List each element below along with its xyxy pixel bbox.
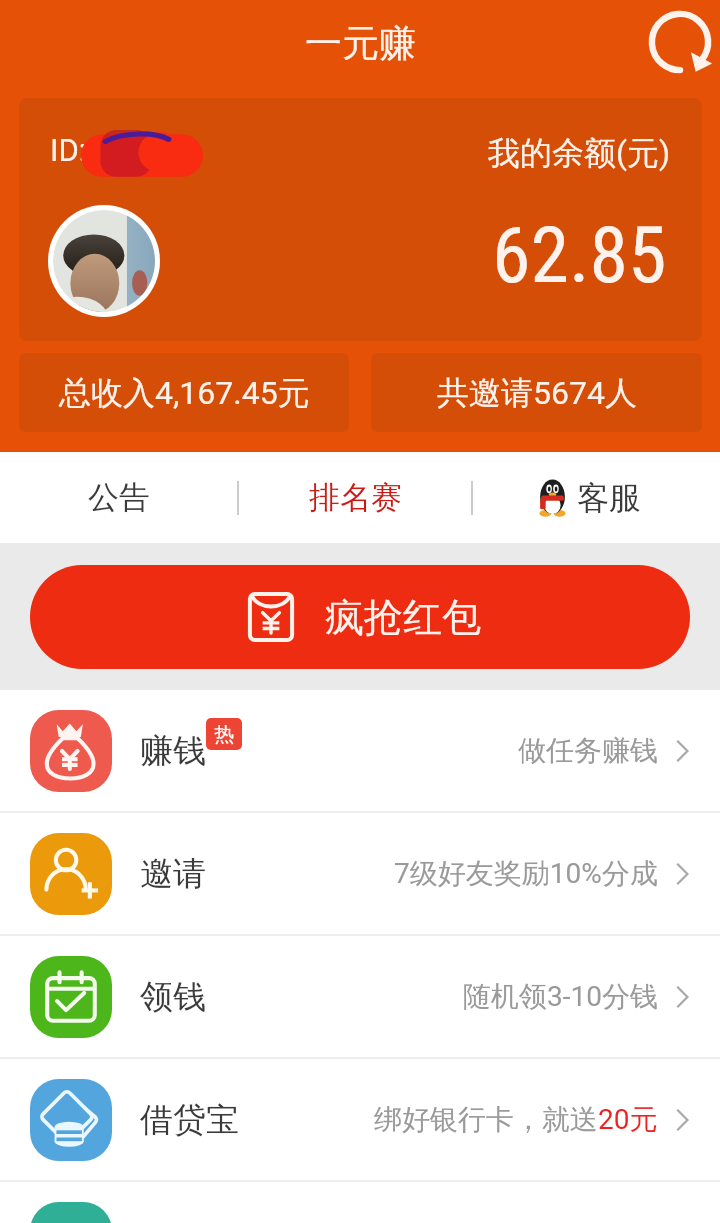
staticText: 客服 bbox=[577, 478, 641, 518]
button[interactable]: 排名赛 bbox=[239, 452, 471, 543]
button[interactable]: 公告 bbox=[0, 452, 237, 543]
button[interactable]: 疯抢红包 bbox=[30, 565, 690, 669]
button[interactable]: 邀请 bbox=[0, 813, 720, 934]
staticText: 我的余额(元) bbox=[488, 133, 671, 173]
staticText: 7级好友奖励10%分成 bbox=[394, 856, 658, 891]
button[interactable]: ID: bbox=[19, 98, 702, 341]
button[interactable]: Refresh bbox=[642, 4, 718, 80]
button[interactable] bbox=[0, 1182, 720, 1223]
staticText: 共邀请5674人 bbox=[437, 373, 637, 413]
staticText: 20元 bbox=[598, 1102, 658, 1137]
button[interactable]: 赚钱 bbox=[0, 690, 720, 811]
button[interactable]: 借贷宝 bbox=[0, 1059, 720, 1180]
button[interactable]: 共邀请5674人 bbox=[371, 353, 702, 432]
staticText: 赚钱 bbox=[140, 730, 206, 772]
button[interactable]: 领钱 bbox=[0, 936, 720, 1057]
button[interactable]: 客服 bbox=[473, 452, 720, 543]
staticText: 公告 bbox=[88, 478, 150, 517]
staticText: 绑好银行卡，就送 bbox=[374, 1102, 598, 1137]
staticText: 一元赚 bbox=[305, 20, 416, 67]
staticText: 做任务赚钱 bbox=[518, 733, 658, 768]
staticText: 总收入4,167.45元 bbox=[59, 373, 310, 413]
staticText: 借贷宝 bbox=[140, 1099, 239, 1141]
staticText: 热 bbox=[214, 722, 234, 747]
staticText: 领钱 bbox=[140, 976, 206, 1018]
staticText: 疯抢红包 bbox=[325, 593, 481, 642]
staticText: 排名赛 bbox=[309, 478, 402, 517]
staticText: 随机领3-10分钱 bbox=[463, 979, 658, 1014]
staticText: 邀请 bbox=[140, 853, 206, 895]
staticText: ID: bbox=[50, 132, 87, 168]
button[interactable]: 总收入4,167.45元 bbox=[19, 353, 349, 432]
staticText: 62.85 bbox=[492, 210, 667, 301]
